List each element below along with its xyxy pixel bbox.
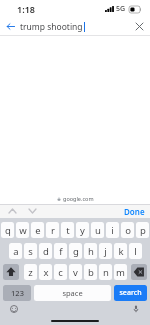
button[interactable]: x — [39, 264, 52, 280]
button[interactable]: l — [129, 243, 142, 259]
button[interactable]: search — [114, 285, 147, 301]
button[interactable]: d — [39, 243, 52, 259]
staticText: search — [119, 288, 142, 298]
staticText: trump shooting — [20, 21, 83, 33]
button[interactable]: c — [54, 264, 67, 280]
staticText: s — [28, 245, 33, 258]
button[interactable]: Emoji — [6, 301, 22, 317]
button[interactable]: o — [121, 222, 134, 238]
button[interactable]: n — [99, 264, 112, 280]
staticText: Done — [124, 206, 145, 217]
button[interactable]: Dictate — [128, 301, 144, 317]
button[interactable]: p — [136, 222, 149, 238]
button[interactable]: i — [106, 222, 119, 238]
staticText: x — [43, 266, 49, 279]
staticText: d — [43, 245, 49, 258]
button[interactable]: z — [24, 264, 37, 280]
button[interactable]: j — [99, 243, 112, 259]
button[interactable]: Done — [124, 206, 145, 217]
button[interactable]: y — [76, 222, 89, 238]
staticText: o — [125, 224, 131, 237]
staticText: z — [28, 266, 33, 279]
staticText: space — [62, 288, 83, 298]
staticText: p — [140, 224, 146, 237]
staticText: y — [80, 224, 85, 237]
staticText: q — [5, 224, 11, 237]
button[interactable]: a — [9, 243, 22, 259]
button[interactable]: f — [54, 243, 67, 259]
staticText: n — [103, 266, 109, 279]
staticText: t — [66, 224, 70, 237]
staticText: m — [116, 266, 125, 279]
button[interactable]: h — [84, 243, 97, 259]
button[interactable]: k — [114, 243, 127, 259]
button[interactable]: b — [84, 264, 97, 280]
staticText: a — [13, 245, 19, 258]
button[interactable]: space — [34, 285, 111, 301]
staticText: e — [35, 224, 41, 237]
staticText: v — [73, 266, 78, 279]
button[interactable]: 123 — [3, 285, 31, 301]
button[interactable]: u — [91, 222, 104, 238]
staticText: i — [111, 224, 114, 237]
staticText: u — [95, 224, 101, 237]
button[interactable]: s — [24, 243, 37, 259]
button[interactable]: Next field — [24, 204, 41, 218]
staticText: c — [58, 266, 63, 279]
button[interactable]: g — [69, 243, 82, 259]
staticText: google.com — [63, 195, 94, 202]
staticText: j — [104, 245, 107, 258]
button[interactable]: Clear search — [128, 18, 150, 35]
staticText: 1:18 — [17, 3, 35, 15]
staticText: l — [134, 245, 137, 258]
button[interactable]: e — [31, 222, 44, 238]
staticText: b — [88, 266, 94, 279]
button[interactable]: q — [1, 222, 14, 238]
staticText: g — [73, 245, 79, 258]
button[interactable]: w — [16, 222, 29, 238]
button[interactable]: t — [61, 222, 74, 238]
button[interactable]: Shift — [3, 264, 19, 280]
button[interactable]: Back — [0, 18, 20, 35]
button[interactable]: m — [114, 264, 127, 280]
button[interactable]: r — [46, 222, 59, 238]
button[interactable]: v — [69, 264, 82, 280]
staticText: w — [19, 224, 27, 237]
staticText: 5G — [116, 4, 126, 14]
button[interactable]: Previous field — [4, 204, 21, 218]
button[interactable]: trump shooting — [20, 18, 128, 35]
staticText: k — [118, 245, 124, 258]
staticText: 123 — [11, 288, 24, 298]
staticText: r — [51, 224, 55, 237]
staticText: f — [59, 245, 63, 258]
staticText: h — [88, 245, 94, 258]
button[interactable]: Delete — [131, 264, 147, 280]
